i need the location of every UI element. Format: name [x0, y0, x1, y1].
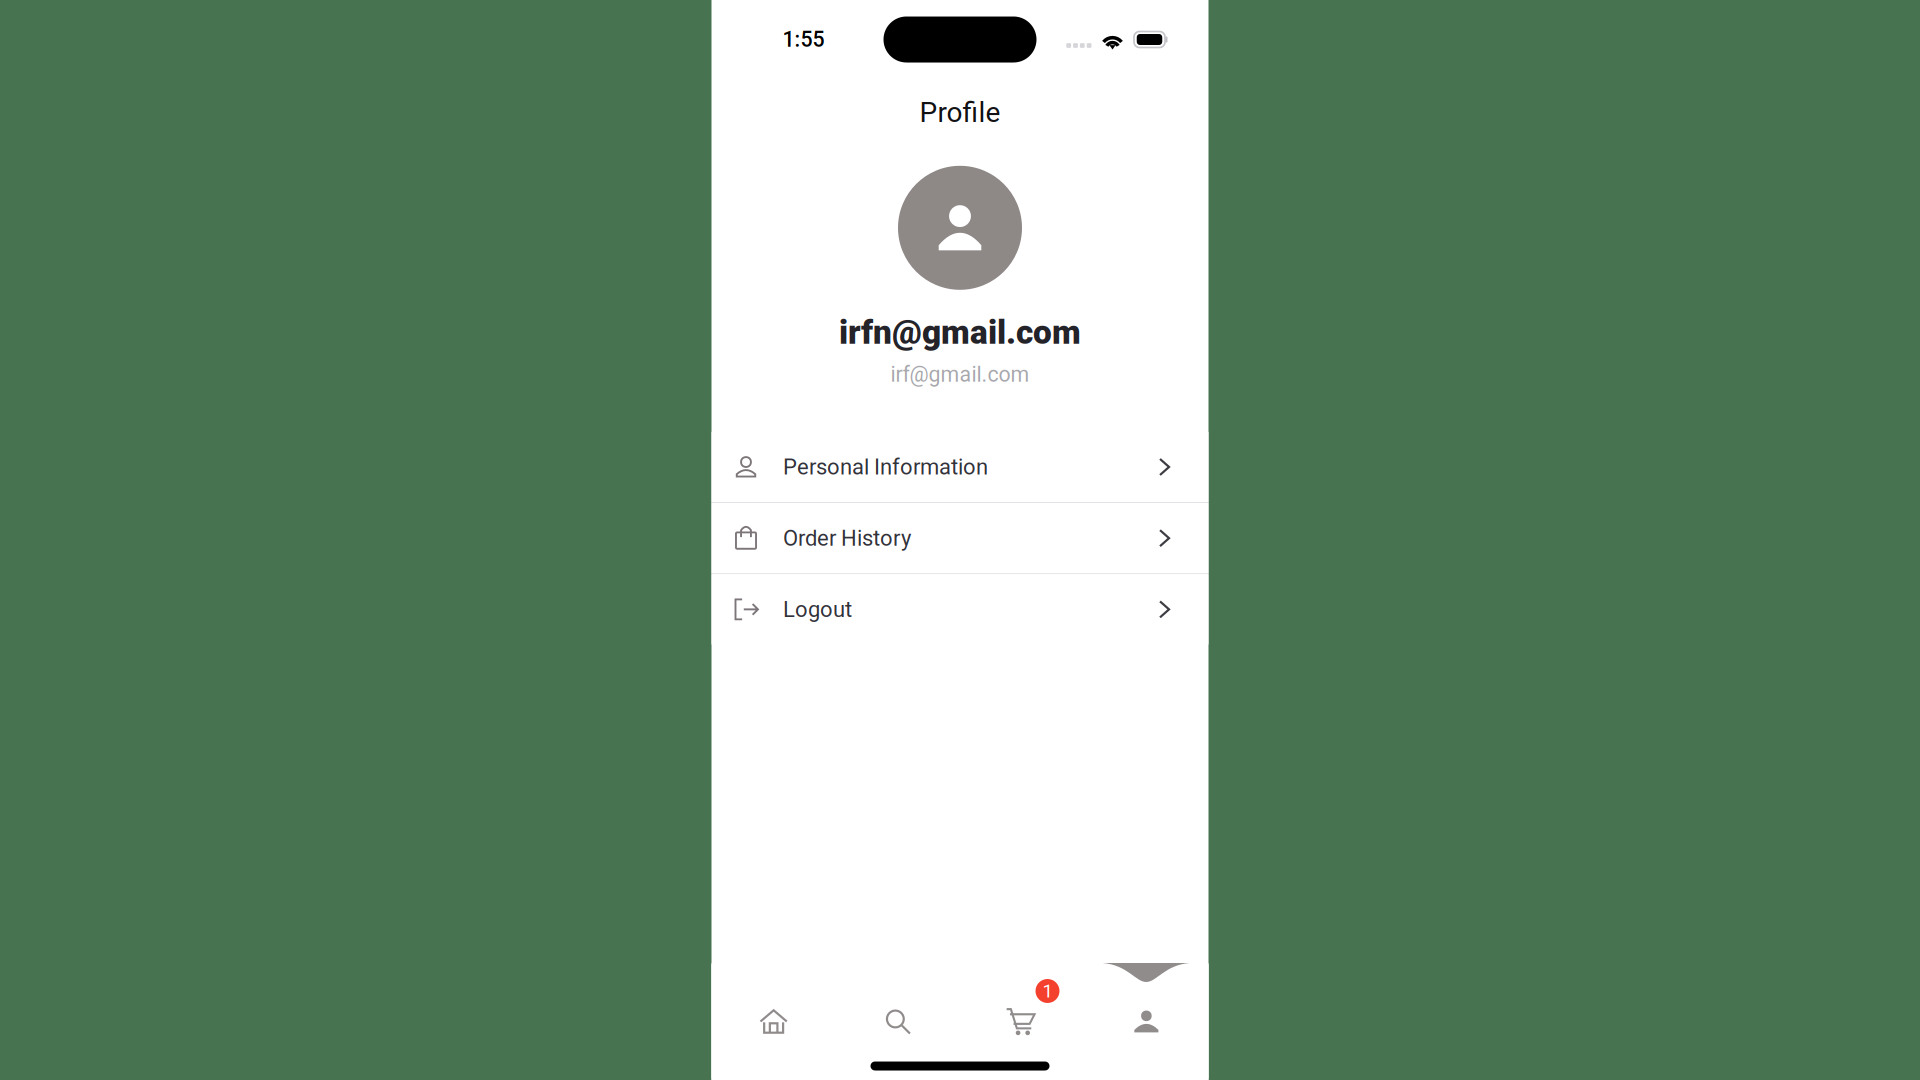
staticText: 1:55: [782, 27, 824, 52]
button[interactable]: Personal Information: [711, 432, 1208, 502]
button[interactable]: Home: [711, 964, 836, 1078]
staticText: irfn@gmail.com: [839, 313, 1081, 352]
staticText: Profile: [919, 96, 1000, 129]
button[interactable]: Cart: [960, 964, 1084, 1078]
button[interactable]: Order History: [711, 503, 1208, 573]
button[interactable]: Search: [836, 964, 960, 1078]
staticText: Personal Information: [783, 454, 988, 480]
staticText: Logout: [783, 596, 852, 622]
button[interactable]: Profile: [1084, 964, 1208, 1078]
button[interactable]: Logout: [711, 574, 1208, 644]
staticText: irf@gmail.com: [890, 362, 1029, 387]
staticText: 1: [1042, 980, 1052, 1002]
staticText: Order History: [783, 525, 911, 551]
